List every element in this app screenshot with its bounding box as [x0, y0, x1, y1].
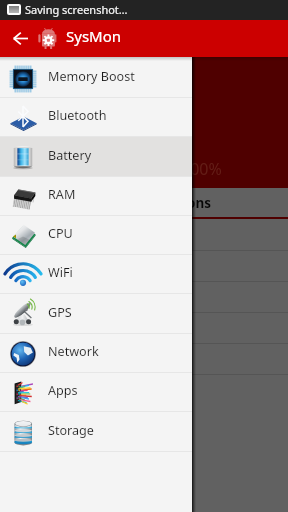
button[interactable]: Apps: [0, 373, 192, 412]
staticText: Saving screenshot…: [25, 2, 128, 17]
staticText: RAM: [48, 186, 76, 203]
staticText: Bluetooth: [48, 107, 107, 124]
button[interactable]: Battery: [0, 137, 192, 177]
staticText: Options: [158, 194, 212, 212]
staticText: Battery: [48, 147, 92, 164]
staticText: Apps: [48, 382, 78, 399]
button[interactable]: Memory Boost: [0, 59, 192, 98]
staticText: Storage: [48, 422, 94, 439]
staticText: GPS: [48, 304, 72, 321]
staticText: CPU: [48, 225, 73, 242]
button[interactable]: Storage: [0, 412, 192, 452]
button[interactable]: GPS: [0, 294, 192, 334]
staticText: 100%: [181, 158, 222, 180]
staticText: Memory Boost: [48, 68, 135, 85]
button[interactable]: WiFi: [0, 255, 192, 294]
button[interactable]: Network: [0, 334, 192, 373]
staticText: Network: [48, 343, 99, 360]
staticText: SysMon: [66, 26, 122, 46]
staticText: WiFi: [48, 264, 73, 281]
button[interactable]: CPU: [0, 216, 192, 255]
button[interactable]: RAM: [0, 177, 192, 216]
button[interactable]: Bluetooth: [0, 98, 192, 137]
button[interactable]: Back: [0, 20, 40, 57]
